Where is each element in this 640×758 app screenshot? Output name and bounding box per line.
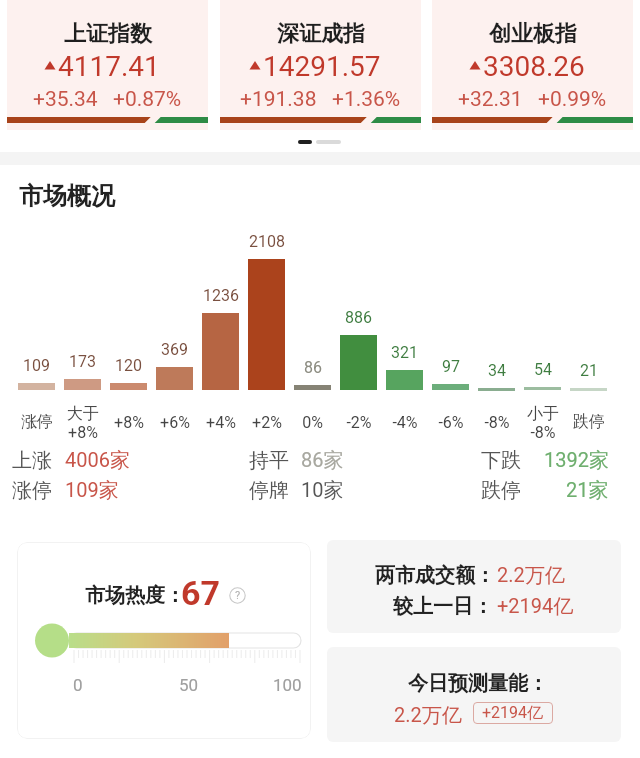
staticText: 97 (442, 357, 460, 376)
staticText: +35.34 (33, 87, 98, 112)
staticText: 14291.57 (263, 50, 381, 83)
staticText: 市场热度： (85, 583, 185, 608)
staticText: 上证指数 (64, 20, 152, 48)
button[interactable]: 持平 (249, 448, 344, 473)
staticText: 50 (179, 675, 199, 695)
staticText: 54 (534, 360, 552, 379)
button[interactable]: 深证成指 (220, 0, 421, 130)
staticText: 21家 (566, 478, 609, 503)
staticText: +4% (206, 413, 236, 432)
staticText: +2194亿 (482, 703, 544, 723)
staticText: +2% (252, 413, 282, 432)
staticText: 创业板指 (489, 20, 577, 48)
staticText: 109家 (65, 478, 119, 503)
button[interactable]: Page 2 (316, 140, 341, 144)
staticText: +6% (160, 413, 190, 432)
button[interactable]: 涨停 (12, 478, 119, 503)
staticText: 21 (580, 361, 598, 380)
staticText: 2108 (249, 232, 285, 251)
staticText: 2.2万亿 (497, 563, 565, 588)
staticText: +0.87% (113, 87, 182, 112)
staticText: 跌停 (481, 478, 521, 503)
staticText: 1236 (203, 286, 239, 305)
button[interactable]: 上涨 (12, 448, 130, 473)
staticText: +8% (114, 413, 144, 432)
staticText: 100 (273, 675, 302, 695)
staticText: 两市成交额： (375, 563, 495, 588)
staticText: 173 (69, 352, 96, 371)
button[interactable]: 今日预测量能： (327, 647, 621, 742)
button[interactable]: Page 1 (298, 140, 312, 144)
staticText: 34 (488, 361, 506, 380)
staticText: -2% (346, 413, 372, 432)
button[interactable]: 两市成交额： (327, 540, 621, 633)
staticText: 今日预测量能： (408, 671, 548, 696)
staticText: 2.2万亿 (394, 703, 462, 728)
button[interactable]: 市场热度： (17, 542, 311, 739)
staticText: 深证成指 (277, 20, 365, 48)
staticText: +191.38 (240, 87, 317, 112)
staticText: 120 (115, 356, 142, 375)
staticText: +0.99% (538, 87, 607, 112)
staticText: 0% (302, 413, 323, 432)
staticText: 涨停 (21, 412, 53, 432)
staticText: 4117.41 (58, 50, 160, 83)
staticText: +1.36% (332, 87, 401, 112)
staticText: -8% (484, 413, 510, 432)
button[interactable]: 上证指数 (7, 0, 208, 130)
staticText: 86家 (301, 448, 344, 473)
button[interactable]: 下跌 (481, 448, 609, 473)
staticText: 0 (73, 675, 83, 695)
staticText: 跌停 (573, 412, 605, 432)
staticText: 886 (345, 308, 372, 327)
button[interactable]: 停牌 (249, 478, 344, 503)
staticText: 86 (304, 358, 322, 377)
staticText: -4% (392, 413, 418, 432)
staticText: 369 (161, 340, 188, 359)
staticText: 大于 +8% (67, 404, 99, 440)
staticText: 持平 (249, 448, 289, 473)
staticText: +32.31 (458, 87, 523, 112)
staticText: 下跌 (481, 448, 521, 473)
staticText: 321 (391, 343, 418, 362)
staticText: -6% (438, 413, 464, 432)
staticText: 上涨 (12, 448, 52, 473)
staticText: +2194亿 (497, 594, 574, 619)
staticText: ? (235, 589, 241, 602)
button[interactable]: 创业板指 (432, 0, 633, 130)
staticText: 涨停 (12, 478, 52, 503)
staticText: 较上一日： (393, 594, 493, 619)
staticText: 小于 -8% (527, 404, 559, 440)
staticText: 停牌 (249, 478, 289, 503)
staticText: 67 (181, 573, 221, 613)
staticText: 1392家 (544, 448, 609, 473)
staticText: 4006家 (65, 448, 130, 473)
button[interactable]: 跌停 (481, 478, 609, 503)
staticText: 3308.26 (483, 50, 585, 83)
staticText: 10家 (301, 478, 344, 503)
staticText: 109 (23, 356, 50, 375)
staticText: 市场概况 (19, 181, 115, 211)
